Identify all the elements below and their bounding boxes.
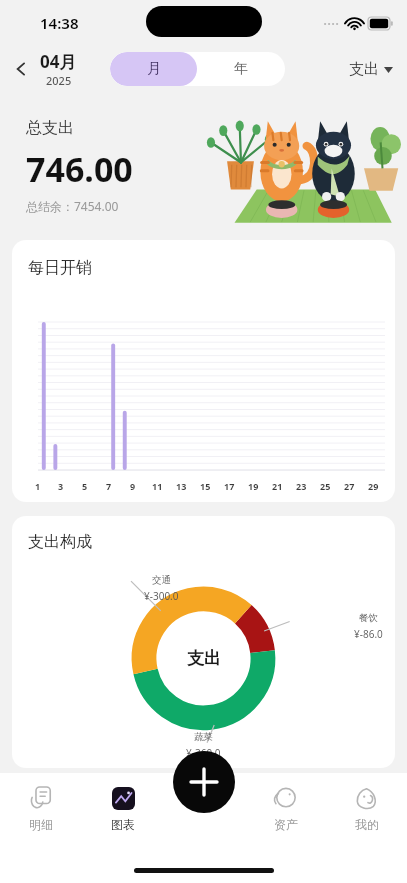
staticText: 27 (344, 480, 355, 492)
staticText: 2025 (46, 73, 72, 88)
staticText: 11 (152, 480, 163, 492)
staticText: 月 (147, 60, 161, 78)
staticText: 年 (234, 60, 248, 78)
staticText: ¥-300.0 (144, 589, 179, 603)
staticText: ¥-360.0 (186, 746, 221, 760)
button[interactable]: Back (8, 50, 77, 88)
staticText: 蔬菜 (194, 731, 213, 743)
button[interactable]: 月 (110, 52, 197, 86)
staticText: 支出 (349, 60, 379, 79)
staticText: 每日开销 (28, 258, 92, 278)
staticText: 5 (82, 480, 88, 492)
staticText: 我的 (355, 817, 379, 832)
staticText: 餐饮 (359, 612, 378, 624)
button[interactable]: 明细 (0, 773, 82, 845)
staticText: 1 (35, 480, 41, 492)
button[interactable]: 图表 (82, 773, 164, 845)
button[interactable]: Add (173, 751, 235, 813)
staticText: 746.00 (26, 146, 133, 192)
staticText: 总支出 (26, 118, 74, 138)
staticText: 17 (224, 480, 235, 492)
staticText: 13 (176, 480, 187, 492)
staticText: 总结余：7454.00 (26, 198, 119, 214)
staticText: ¥-86.0 (354, 627, 383, 641)
staticText: 23 (296, 480, 307, 492)
staticText: 04月 (40, 50, 77, 73)
button[interactable]: 支出 (349, 60, 393, 79)
staticText: 15 (200, 480, 211, 492)
staticText: 图表 (111, 817, 135, 832)
staticText: 14:38 (40, 13, 79, 33)
button[interactable]: 支出构成 (12, 516, 395, 768)
staticText: 21 (272, 480, 283, 492)
staticText: 支出 (187, 648, 221, 669)
staticText: 19 (248, 480, 259, 492)
staticText: 25 (320, 480, 331, 492)
button[interactable]: 每日开销 (12, 240, 395, 502)
staticText: 支出构成 (28, 532, 92, 552)
staticText: 交通 (152, 574, 171, 586)
staticText: 9 (130, 480, 136, 492)
staticText: 资产 (274, 817, 298, 832)
staticText: 7 (106, 480, 112, 492)
staticText: 29 (368, 480, 379, 492)
button[interactable]: 资产 (245, 773, 326, 845)
button[interactable]: 我的 (326, 773, 407, 845)
staticText: 明细 (29, 817, 53, 832)
button[interactable]: 年 (197, 52, 285, 86)
staticText: 3 (58, 480, 64, 492)
other: Back (8, 56, 34, 82)
